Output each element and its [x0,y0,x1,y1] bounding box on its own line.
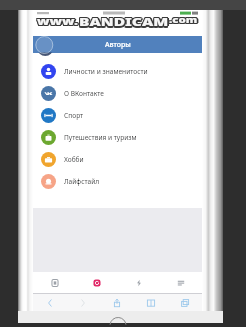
staticText: .com [169,16,198,26]
button[interactable]: Хобби [33,148,202,170]
button[interactable]: Back [33,294,66,311]
staticText: BANDICAM [78,15,168,27]
staticText: Хобби [64,155,84,164]
staticText: www. [39,15,81,26]
button[interactable]: Bookmarks [134,294,168,311]
staticText: Авторы [105,40,131,50]
staticText: BANDICAM [78,13,168,25]
staticText: BANDICAM [78,14,168,26]
staticText: www. [36,13,78,25]
staticText: BANDICAM [78,16,168,28]
staticText: Путешествия и туризм [64,133,137,142]
staticText: BANDICAM [79,16,169,28]
staticText: BANDICAM [81,15,171,26]
staticText: www. [38,15,80,27]
staticText: .com [168,16,197,26]
button[interactable]: Updates [118,272,160,293]
staticText: www. [37,16,79,28]
button[interactable]: News feed [33,272,76,293]
staticText: www. [38,14,80,26]
button[interactable]: Спорт [33,104,202,126]
staticText: Личности и знаменитости [64,67,148,76]
staticText: .com [170,16,199,26]
staticText: www. [37,15,79,26]
button[interactable]: О ВКонтакте [33,82,202,104]
staticText: .com [169,13,198,24]
staticText: .com [170,15,199,26]
staticText: BANDICAM [80,16,170,28]
button[interactable]: Путешествия и туризм [33,126,202,148]
staticText: .com [168,15,197,26]
staticText: www. [38,16,80,28]
button[interactable]: Menu [160,272,202,293]
staticText: BANDICAM [80,15,170,27]
staticText: www. [37,13,79,25]
staticText: www. [36,15,78,26]
staticText: www. [36,16,78,28]
button[interactable]: Личности и знаменитости [33,60,202,82]
staticText: .com [168,14,197,24]
button[interactable]: Share [100,294,134,311]
staticText: .com [169,15,198,25]
staticText: Лайфстайл [64,177,100,186]
staticText: www. [36,15,78,27]
staticText: BANDICAM [79,13,169,25]
staticText: BANDICAM [78,15,168,26]
staticText: BANDICAM [80,14,170,26]
staticText: .com [170,14,199,24]
button[interactable]: Лайфстайл [33,170,202,192]
staticText: www. [38,13,80,25]
staticText: .com [168,15,197,25]
button[interactable]: Stories [76,272,118,293]
staticText: BANDICAM [80,13,170,25]
staticText: .com [168,13,197,24]
staticText: www. [36,14,78,26]
button[interactable]: Tabs [168,294,202,311]
staticText: О ВКонтакте [64,89,104,98]
button[interactable]: Авторы [33,36,202,53]
staticText: .com [170,13,199,24]
staticText: .com [171,15,200,25]
staticText: Спорт [64,111,84,120]
staticText: BANDICAM [79,15,169,26]
